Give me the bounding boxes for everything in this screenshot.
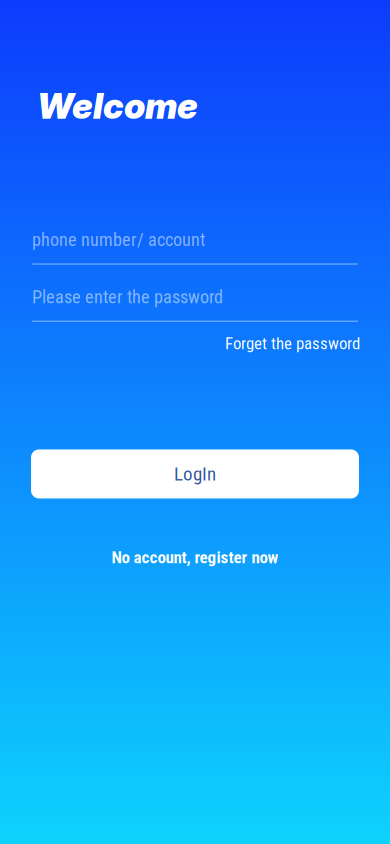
button[interactable]: phone number/ account — [32, 229, 358, 264]
staticText: Please enter the password — [32, 286, 223, 308]
staticText: phone number/ account — [32, 229, 205, 250]
button[interactable]: Forget the password — [225, 334, 360, 353]
button[interactable]: LogIn — [31, 449, 359, 498]
staticText: LogIn — [174, 463, 216, 485]
staticText: No account, register now — [111, 547, 278, 567]
button[interactable]: Please enter the password — [32, 286, 358, 322]
staticText: Welcome — [37, 85, 198, 127]
button[interactable]: No account, register now — [111, 547, 278, 567]
staticText: Forget the password — [225, 334, 360, 353]
